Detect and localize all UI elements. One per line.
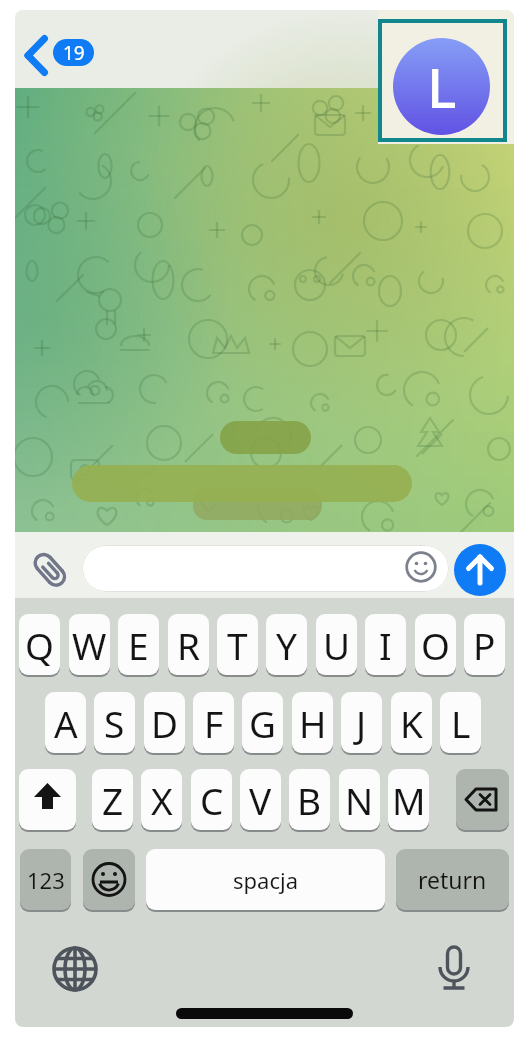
button[interactable]: S [94, 692, 135, 755]
button[interactable]: R [168, 614, 209, 677]
button[interactable]: D [144, 692, 185, 755]
button[interactable]: K [391, 692, 432, 755]
button[interactable]: H [292, 692, 333, 755]
button[interactable]: J [341, 692, 382, 755]
button[interactable] [51, 945, 99, 993]
button[interactable]: 123 [20, 849, 71, 912]
button[interactable]: return [396, 849, 509, 912]
staticText: T [227, 620, 248, 670]
staticText: return [418, 864, 487, 895]
button[interactable] [30, 548, 70, 592]
staticText: R [177, 620, 201, 670]
staticText: B [297, 775, 322, 825]
staticText: C [200, 775, 224, 825]
staticText: F [204, 698, 224, 748]
button[interactable]: O [415, 614, 456, 677]
staticText: spacja [233, 865, 298, 895]
staticText: O [421, 620, 450, 670]
button[interactable] [406, 552, 436, 582]
button[interactable] [23, 34, 53, 78]
staticText: H [299, 698, 327, 748]
staticText: Q [25, 620, 54, 670]
staticText: K [400, 698, 423, 748]
button[interactable]: Y [266, 614, 307, 677]
button[interactable]: spacja [146, 849, 385, 912]
button[interactable]: N [339, 769, 380, 832]
button[interactable]: A [45, 692, 86, 755]
button[interactable]: L [440, 692, 481, 755]
button[interactable] [82, 545, 449, 592]
staticText: Y [276, 620, 297, 670]
staticText: N [345, 775, 374, 825]
staticText: L [427, 49, 457, 124]
staticText: 19 [63, 40, 85, 66]
button[interactable]: L [393, 38, 490, 135]
staticText: D [151, 698, 179, 748]
staticText: Z [102, 775, 124, 825]
staticText: P [473, 620, 496, 670]
button[interactable] [454, 544, 506, 596]
button[interactable] [83, 849, 135, 912]
staticText: W [72, 620, 107, 670]
button[interactable] [430, 943, 478, 991]
staticText: M [392, 775, 426, 825]
button[interactable]: Q [19, 614, 60, 677]
button[interactable]: U [316, 614, 357, 677]
button[interactable]: G [242, 692, 283, 755]
button[interactable]: F [193, 692, 234, 755]
button[interactable]: Z [92, 769, 133, 832]
button[interactable]: 19 [53, 39, 94, 66]
staticText: G [249, 698, 276, 748]
staticText: I [379, 620, 392, 670]
staticText: 123 [27, 865, 65, 895]
staticText: V [249, 775, 272, 825]
button[interactable]: B [289, 769, 330, 832]
button[interactable]: V [240, 769, 281, 832]
staticText: U [323, 620, 351, 670]
staticText: L [451, 698, 471, 748]
button[interactable]: T [217, 614, 258, 677]
button[interactable]: X [141, 769, 182, 832]
staticText: E [128, 620, 149, 670]
staticText: J [356, 698, 367, 748]
staticText: S [104, 698, 125, 748]
button[interactable]: I [365, 614, 406, 677]
button[interactable]: M [388, 769, 429, 832]
button[interactable]: C [191, 769, 232, 832]
button[interactable] [456, 769, 509, 832]
button[interactable]: P [464, 614, 505, 677]
staticText: X [151, 775, 173, 825]
button[interactable]: E [118, 614, 159, 677]
staticText: A [54, 698, 78, 748]
button[interactable]: W [69, 614, 110, 677]
button[interactable] [19, 769, 76, 832]
